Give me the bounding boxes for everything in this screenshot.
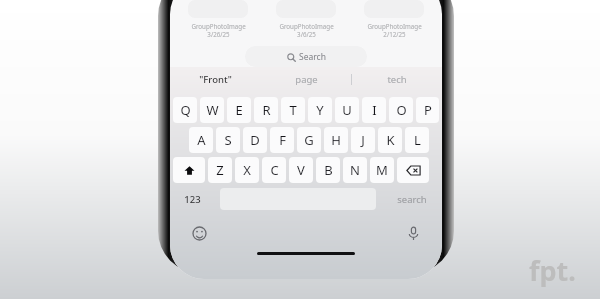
button[interactable]: L xyxy=(405,127,429,153)
button[interactable]: C xyxy=(262,157,286,183)
staticText: C xyxy=(270,161,279,179)
staticText: D xyxy=(250,131,260,149)
staticText: U xyxy=(342,101,352,119)
staticText: Z xyxy=(216,161,224,179)
button[interactable]: page xyxy=(261,67,351,91)
staticText: page xyxy=(295,73,318,86)
staticText: P xyxy=(424,101,432,119)
button[interactable]: Z xyxy=(208,157,232,183)
staticText: S xyxy=(224,131,232,149)
staticText: Search xyxy=(299,51,326,63)
staticText: K xyxy=(386,131,395,149)
staticText: L xyxy=(414,131,421,149)
button[interactable]: U xyxy=(335,97,359,123)
button[interactable]: S xyxy=(216,127,240,153)
button[interactable]: T xyxy=(281,97,305,123)
staticText: tech xyxy=(387,73,407,86)
staticText: X xyxy=(243,161,251,179)
staticText: GroupPhotoImage xyxy=(279,22,334,30)
staticText: 3/26/25 xyxy=(207,30,230,38)
button[interactable]: Q xyxy=(173,97,197,123)
staticText: T xyxy=(289,101,297,119)
staticText: Y xyxy=(316,101,324,119)
staticText: W xyxy=(206,101,219,119)
button[interactable]: W xyxy=(200,97,224,123)
staticText: V xyxy=(297,161,305,179)
button[interactable]: N xyxy=(343,157,367,183)
button[interactable]: P xyxy=(416,97,439,123)
button[interactable]: I xyxy=(362,97,386,123)
button[interactable]: Emoji xyxy=(188,222,210,244)
staticText: H xyxy=(331,131,341,149)
staticText: I xyxy=(372,101,377,119)
staticText: GroupPhotoImage xyxy=(367,22,422,30)
button[interactable]: GroupPhotoImage xyxy=(352,0,436,38)
button[interactable]: X xyxy=(235,157,259,183)
staticText: B xyxy=(324,161,333,179)
button[interactable]: K xyxy=(378,127,402,153)
button[interactable]: 123 xyxy=(174,188,210,210)
staticText: 123 xyxy=(184,193,201,206)
button[interactable]: R xyxy=(254,97,278,123)
button[interactable]: Search xyxy=(245,46,367,67)
button[interactable]: Shift xyxy=(173,157,205,183)
staticText: "Front" xyxy=(199,73,232,86)
button[interactable]: H xyxy=(324,127,348,153)
button[interactable]: tech xyxy=(352,67,442,91)
staticText: J xyxy=(361,131,365,149)
button[interactable]: D xyxy=(243,127,267,153)
button[interactable]: F xyxy=(270,127,294,153)
staticText: F xyxy=(279,131,286,149)
staticText: A xyxy=(197,131,206,149)
button[interactable]: A xyxy=(189,127,213,153)
staticText: O xyxy=(396,101,407,119)
staticText: search xyxy=(397,193,427,206)
button[interactable]: Backspace xyxy=(397,157,429,183)
staticText: 3/6/25 xyxy=(297,30,316,38)
button[interactable]: GroupPhotoImage xyxy=(176,0,260,38)
button[interactable]: O xyxy=(389,97,413,123)
staticText: R xyxy=(262,101,271,119)
staticText: N xyxy=(350,161,360,179)
staticText: G xyxy=(304,131,314,149)
button[interactable]: B xyxy=(316,157,340,183)
staticText: E xyxy=(235,101,243,119)
button[interactable]: V xyxy=(289,157,313,183)
button[interactable]: J xyxy=(351,127,375,153)
button[interactable]: "Front" xyxy=(170,67,261,91)
staticText: Q xyxy=(180,101,191,119)
staticText: 2/12/25 xyxy=(383,30,406,38)
button[interactable]: GroupPhotoImage xyxy=(264,0,348,38)
staticText: GroupPhotoImage xyxy=(191,22,246,30)
button[interactable]: search xyxy=(386,188,438,210)
button[interactable]: Voice input xyxy=(402,222,424,244)
staticText: fpt. xyxy=(529,252,576,289)
staticText: M xyxy=(376,161,388,179)
button[interactable]: E xyxy=(227,97,251,123)
button[interactable]: M xyxy=(370,157,394,183)
button[interactable]: Y xyxy=(308,97,332,123)
button[interactable]: G xyxy=(297,127,321,153)
